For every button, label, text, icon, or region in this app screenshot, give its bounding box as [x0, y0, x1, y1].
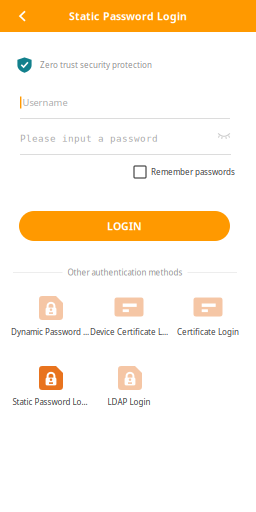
staticText: Device Certificate L...	[90, 327, 168, 337]
button[interactable]: Certificate Login	[168, 294, 247, 338]
staticText: Dynamic Password ...	[11, 327, 89, 337]
button[interactable]: Back	[0, 0, 36, 32]
staticText: Static Password Lo...	[12, 397, 87, 407]
staticText: Please input a password	[20, 133, 158, 144]
staticText: Static Password Login	[69, 9, 187, 23]
staticText: Other authentication methods	[67, 267, 182, 278]
button[interactable]: LDAP Login	[89, 364, 168, 408]
staticText: LDAP Login	[107, 397, 150, 407]
button[interactable]: Device Certificate L...	[89, 294, 168, 338]
button[interactable]: Static Password Lo...	[10, 364, 89, 408]
button[interactable]: LOGIN	[19, 211, 230, 241]
staticText: Certificate Login	[177, 327, 239, 337]
staticText: Username	[22, 96, 67, 109]
button[interactable]: Dynamic Password ...	[10, 294, 89, 338]
button[interactable]: Show password	[217, 132, 231, 145]
button[interactable]: Remember passwords	[134, 166, 235, 178]
staticText: LOGIN	[107, 219, 142, 233]
staticText: Remember passwords	[151, 167, 235, 177]
staticText: Zero trust security protection	[40, 60, 152, 70]
